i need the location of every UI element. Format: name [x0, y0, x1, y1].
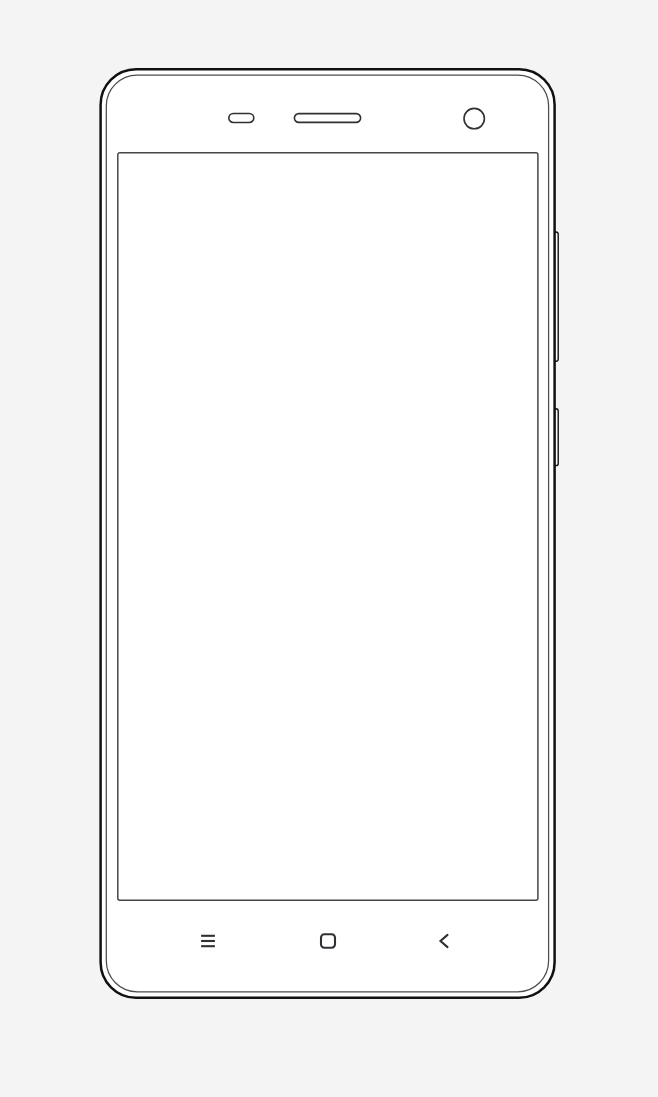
button[interactable]: Volume	[547, 232, 559, 361]
button[interactable]: Power	[547, 409, 559, 466]
button[interactable]: Phone display	[118, 153, 538, 901]
button[interactable]: Menu	[186, 919, 230, 963]
button[interactable]: Back	[422, 919, 466, 963]
button[interactable]: Home	[306, 919, 350, 963]
